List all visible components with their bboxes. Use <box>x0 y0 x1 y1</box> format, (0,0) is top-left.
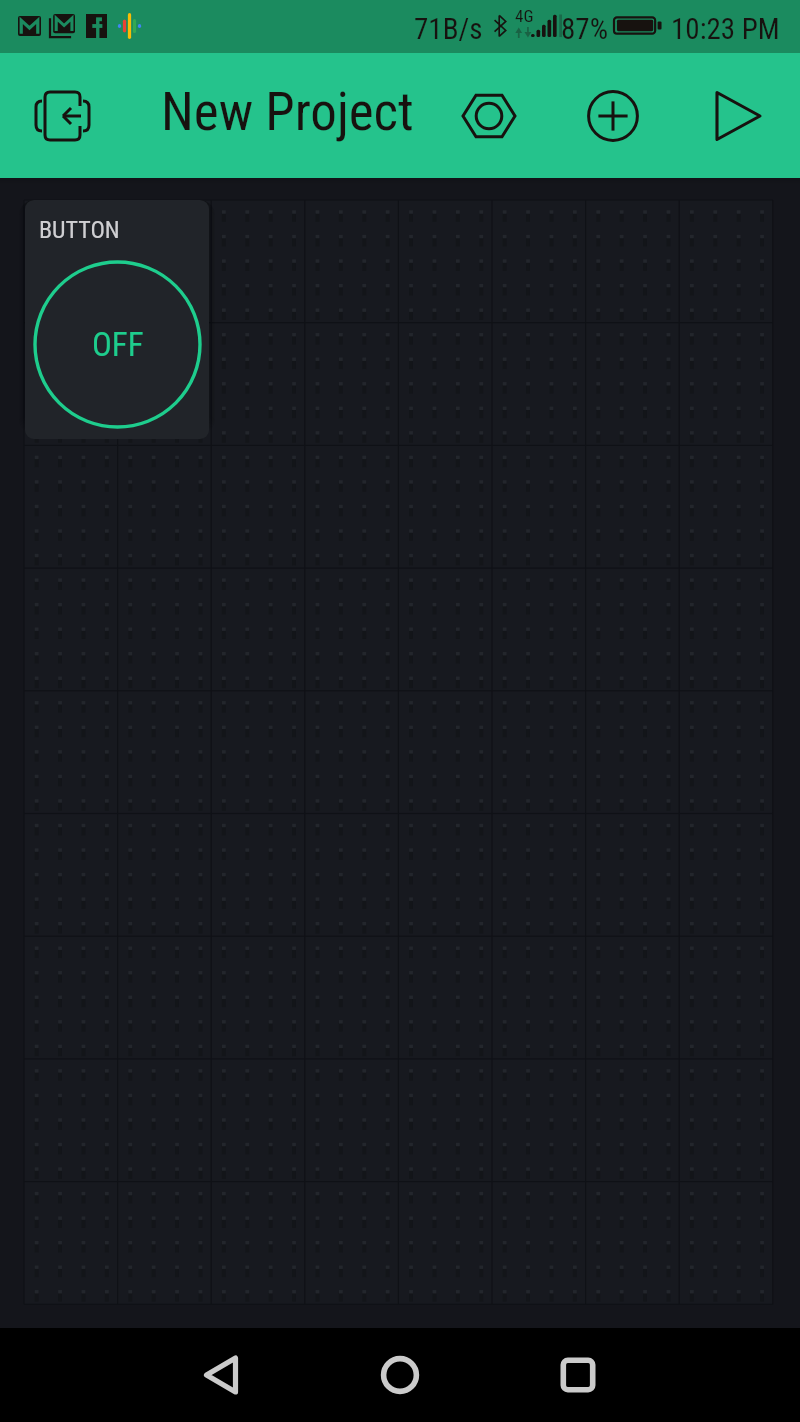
staticText: New Project <box>161 81 414 143</box>
button[interactable]: Back <box>186 1340 256 1410</box>
staticText: OFF <box>92 325 144 364</box>
staticText: 10:23 PM <box>671 12 780 46</box>
button[interactable]: Home <box>365 1340 435 1410</box>
staticText: BUTTON <box>39 216 120 244</box>
button[interactable]: BUTTON <box>25 200 209 439</box>
button[interactable]: Recent apps <box>543 1340 613 1410</box>
staticText: 4G <box>515 6 534 26</box>
button[interactable]: Components <box>437 53 541 178</box>
staticText: 87% <box>561 12 608 46</box>
button[interactable]: Exit project <box>10 53 114 178</box>
button[interactable]: Add component <box>561 53 665 178</box>
staticText: 71B/s <box>414 12 483 46</box>
button[interactable]: Run project <box>686 53 790 178</box>
